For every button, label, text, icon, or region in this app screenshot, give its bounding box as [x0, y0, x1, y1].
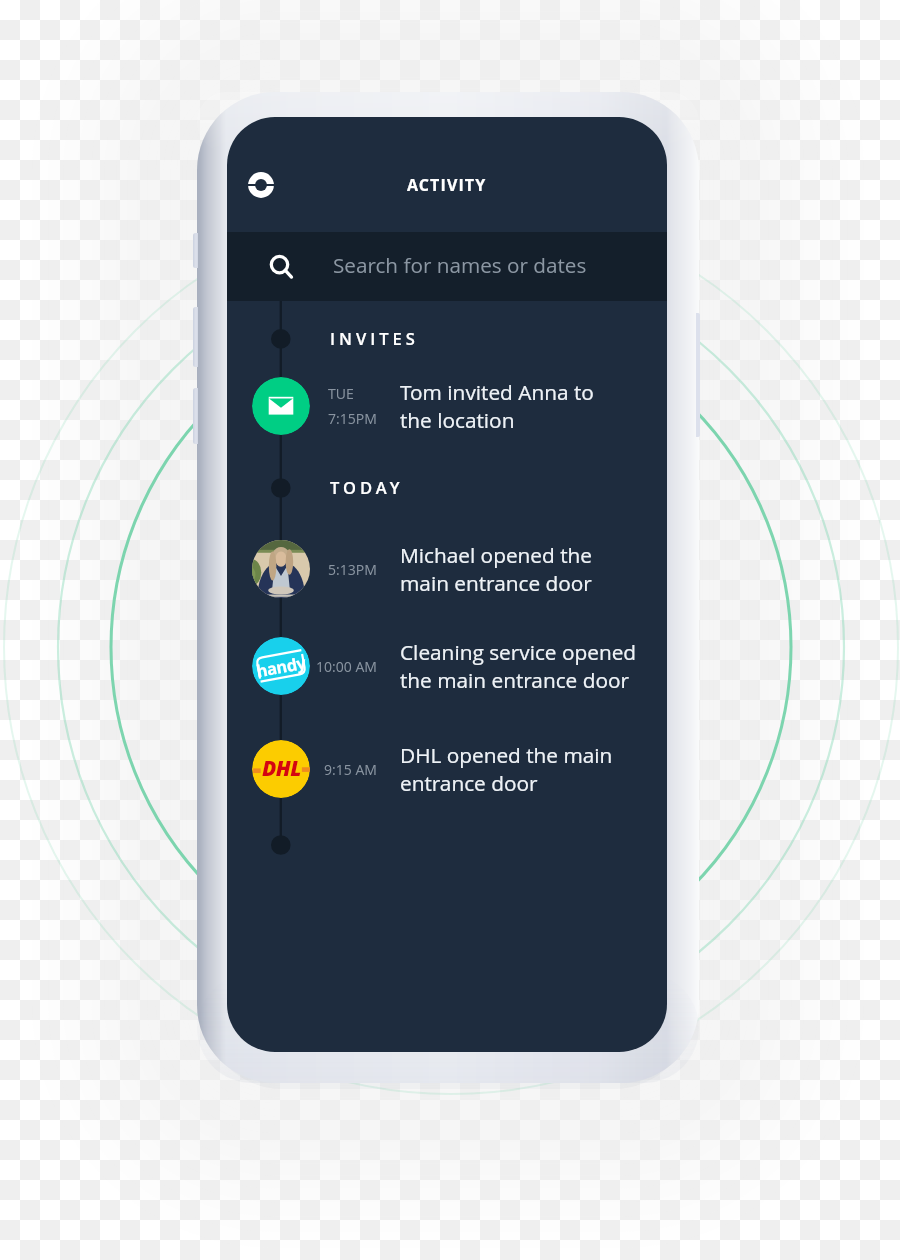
staticText: TODAY — [330, 476, 404, 498]
button[interactable]: Menu — [239, 163, 283, 207]
staticText: 7:15PM — [328, 409, 377, 428]
button[interactable]: INVITES — [330, 324, 419, 352]
button[interactable]: TUE — [227, 363, 667, 449]
button[interactable]: 5:13PM — [227, 526, 667, 612]
staticText: ACTIVITY — [407, 174, 487, 196]
staticText: Michael opened the main entrance door — [400, 541, 592, 598]
staticText: handy — [254, 651, 308, 681]
staticText: INVITES — [330, 327, 419, 349]
button[interactable]: TODAY — [330, 473, 404, 501]
staticText: 5:13PM — [328, 560, 377, 579]
button[interactable]: Search for names or dates — [227, 232, 667, 301]
staticText: 10:00 AM — [316, 657, 377, 676]
staticText: TUE — [328, 384, 354, 403]
staticText: Search for names or dates — [333, 251, 587, 279]
staticText: DHL — [262, 754, 301, 783]
button[interactable]: DHL — [227, 726, 667, 812]
staticText: Tom invited Anna to the location — [400, 378, 594, 435]
staticText: Cleaning service opened the main entranc… — [400, 638, 637, 695]
button[interactable]: handy — [227, 623, 667, 709]
staticText: 9:15 AM — [324, 760, 377, 779]
staticText: DHL opened the main entrance door — [400, 741, 613, 798]
